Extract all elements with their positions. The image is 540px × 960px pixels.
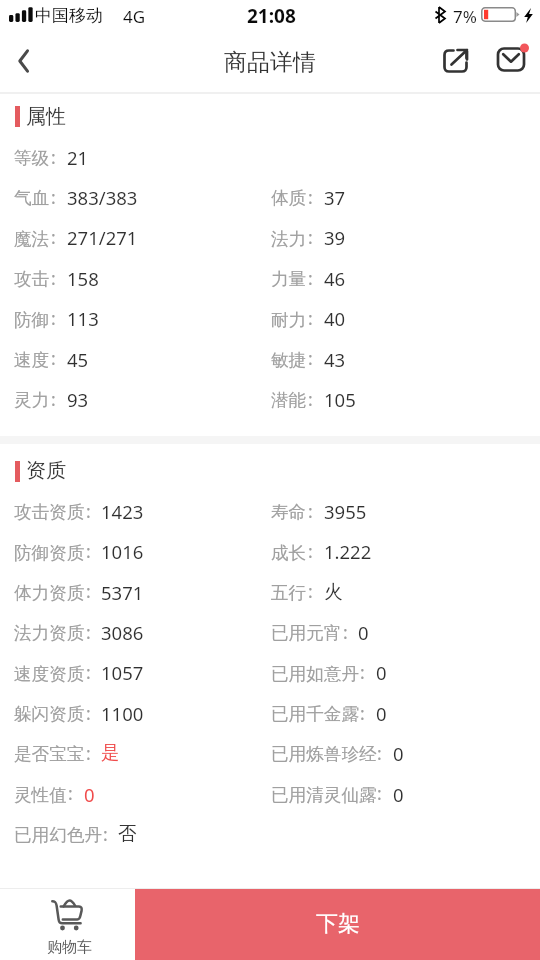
staticText: 灵性值 bbox=[14, 784, 67, 806]
staticText: 体质 bbox=[271, 187, 307, 209]
staticText: 105 bbox=[324, 387, 356, 412]
staticText: 46 bbox=[324, 266, 346, 291]
staticText: 39 bbox=[324, 225, 346, 250]
staticText: : bbox=[86, 660, 91, 684]
staticText: : bbox=[51, 225, 56, 249]
staticText: 7% bbox=[453, 5, 477, 28]
staticText: : bbox=[308, 266, 313, 290]
staticText: 43 bbox=[324, 347, 346, 372]
staticText: : bbox=[86, 741, 91, 765]
staticText: 45 bbox=[67, 347, 89, 372]
button[interactable]: Messages bbox=[488, 32, 536, 93]
staticText: 0 bbox=[393, 782, 404, 807]
staticText: 40 bbox=[324, 306, 346, 331]
staticText: 五行 bbox=[271, 582, 307, 604]
staticText: 寿命 bbox=[271, 501, 307, 523]
staticText: 攻击资质 bbox=[14, 501, 85, 523]
staticText: 中国移动 bbox=[35, 5, 103, 26]
staticText: 113 bbox=[67, 306, 99, 331]
staticText: 法力 bbox=[271, 228, 307, 250]
staticText: 体力资质 bbox=[14, 582, 85, 604]
staticText: 灵力 bbox=[14, 389, 50, 411]
staticText: : bbox=[308, 387, 313, 411]
staticText: 购物车 bbox=[47, 938, 92, 957]
staticText: 21:08 bbox=[247, 3, 296, 29]
staticText: 已用幻色丹 bbox=[14, 824, 102, 846]
staticText: 否 bbox=[118, 822, 137, 845]
staticText: 是 bbox=[101, 741, 120, 764]
staticText: : bbox=[86, 499, 91, 523]
staticText: 0 bbox=[376, 660, 387, 685]
staticText: 攻击 bbox=[14, 268, 50, 290]
staticText: 等级 bbox=[14, 147, 50, 169]
staticText: : bbox=[360, 701, 365, 725]
staticText: : bbox=[86, 701, 91, 725]
staticText: 商品详情 bbox=[224, 48, 316, 77]
staticText: 下架 bbox=[316, 910, 360, 938]
staticText: : bbox=[308, 539, 313, 563]
staticText: 已用如意丹 bbox=[271, 663, 359, 685]
staticText: 1423 bbox=[101, 499, 144, 524]
staticText: 已用清灵仙露 bbox=[271, 784, 377, 806]
staticText: 1057 bbox=[101, 660, 144, 685]
staticText: 已用千金露 bbox=[271, 703, 359, 725]
staticText: 力量 bbox=[271, 268, 307, 290]
staticText: 4G bbox=[123, 5, 146, 28]
staticText: 5371 bbox=[101, 580, 144, 605]
button[interactable]: Back bbox=[0, 35, 50, 91]
staticText: : bbox=[86, 539, 91, 563]
staticText: 防御资质 bbox=[14, 542, 85, 564]
staticText: : bbox=[308, 225, 313, 249]
staticText: : bbox=[51, 387, 56, 411]
staticText: 敏捷 bbox=[271, 349, 307, 371]
staticText: 魔法 bbox=[14, 228, 50, 250]
staticText: 是否宝宝 bbox=[14, 743, 85, 765]
staticText: 速度 bbox=[14, 349, 50, 371]
staticText: 躲闪资质 bbox=[14, 703, 85, 725]
staticText: 火 bbox=[324, 580, 343, 603]
staticText: : bbox=[360, 660, 365, 684]
staticText: : bbox=[308, 579, 313, 603]
button[interactable]: 购物车 bbox=[0, 889, 135, 960]
staticText: 3086 bbox=[101, 620, 144, 645]
button[interactable]: 下架 bbox=[135, 889, 540, 960]
staticText: 速度资质 bbox=[14, 663, 85, 685]
staticText: 1016 bbox=[101, 539, 144, 564]
staticText: 气血 bbox=[14, 187, 50, 209]
staticText: 0 bbox=[376, 701, 387, 726]
staticText: 防御 bbox=[14, 309, 50, 331]
staticText: 1100 bbox=[101, 701, 144, 726]
staticText: : bbox=[51, 306, 56, 330]
staticText: : bbox=[377, 781, 382, 805]
staticText: : bbox=[103, 822, 108, 846]
staticText: : bbox=[308, 306, 313, 330]
button[interactable]: Share bbox=[432, 32, 480, 93]
staticText: 已用炼兽珍经 bbox=[271, 743, 377, 765]
staticText: 已用元宵 bbox=[271, 622, 342, 644]
staticText: : bbox=[308, 499, 313, 523]
staticText: 158 bbox=[67, 266, 99, 291]
staticText: : bbox=[51, 346, 56, 370]
staticText: : bbox=[86, 620, 91, 644]
staticText: 0 bbox=[358, 620, 369, 645]
staticText: 0 bbox=[84, 782, 95, 807]
staticText: 37 bbox=[324, 185, 346, 210]
staticText: : bbox=[86, 579, 91, 603]
staticText: 潜能 bbox=[271, 389, 307, 411]
staticText: 93 bbox=[67, 387, 89, 412]
staticText: 0 bbox=[393, 741, 404, 766]
staticText: : bbox=[308, 185, 313, 209]
staticText: : bbox=[51, 266, 56, 290]
staticText: : bbox=[308, 346, 313, 370]
staticText: 成长 bbox=[271, 542, 307, 564]
staticText: : bbox=[343, 620, 348, 644]
staticText: 法力资质 bbox=[14, 622, 85, 644]
staticText: 属性 bbox=[26, 104, 66, 129]
staticText: 耐力 bbox=[271, 309, 307, 331]
staticText: 资质 bbox=[26, 458, 66, 483]
staticText: 21 bbox=[67, 145, 89, 170]
staticText: 3955 bbox=[324, 499, 367, 524]
staticText: : bbox=[68, 781, 73, 805]
staticText: 271/271 bbox=[67, 225, 138, 250]
staticText: 1.222 bbox=[324, 539, 372, 564]
